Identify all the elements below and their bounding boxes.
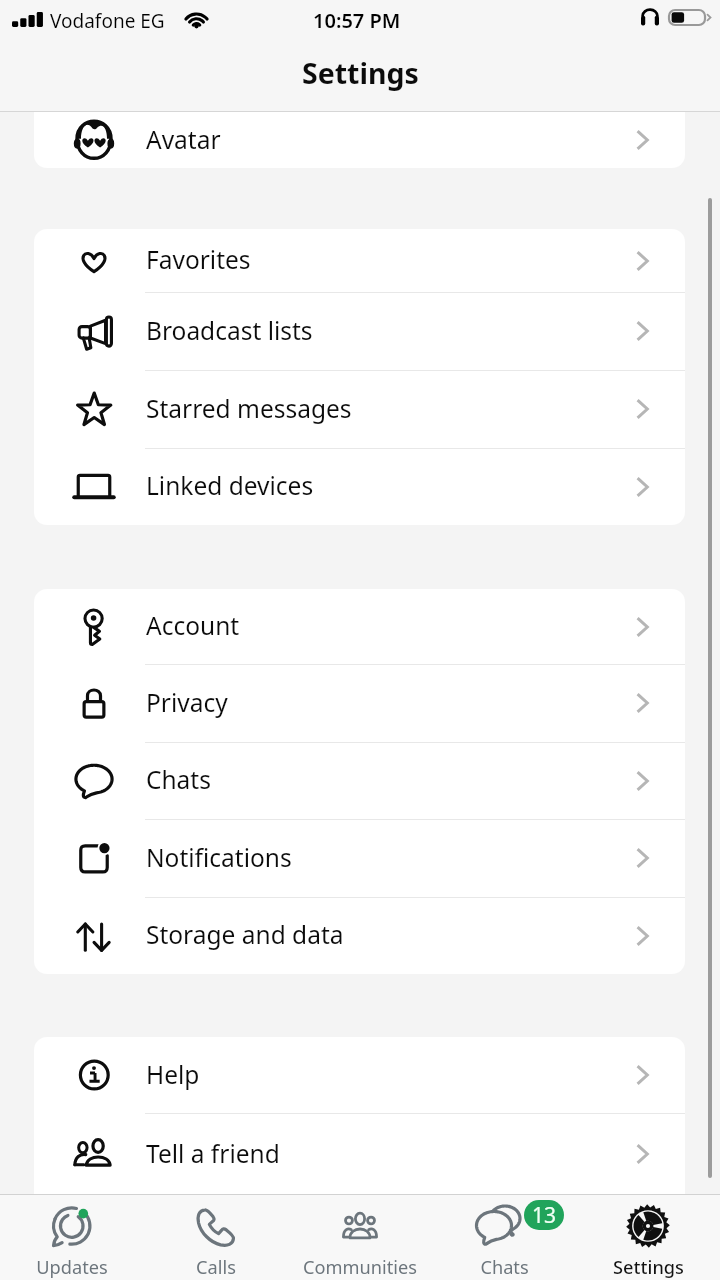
staticText: Help: [146, 1058, 200, 1091]
staticText: Vodafone EG: [50, 8, 165, 34]
button[interactable]: Avatar: [34, 112, 685, 168]
staticText: 10:57 PM: [313, 7, 401, 34]
staticText: Avatar: [146, 123, 221, 156]
button[interactable]: Broadcast lists: [34, 292, 685, 370]
staticText: Updates: [36, 1255, 108, 1280]
staticText: Chats: [146, 763, 211, 796]
button[interactable]: Favorites: [34, 229, 685, 292]
button[interactable]: Calls: [144, 1195, 288, 1280]
button[interactable]: Tell a friend: [34, 1113, 685, 1195]
button[interactable]: Notifications: [34, 819, 685, 897]
button[interactable]: Linked devices: [34, 448, 685, 525]
staticText: Notifications: [146, 841, 292, 874]
staticText: Account: [146, 609, 240, 642]
staticText: 13: [532, 1201, 557, 1230]
staticText: Calls: [196, 1255, 236, 1280]
button[interactable]: Communities: [288, 1195, 432, 1280]
button[interactable]: Privacy: [34, 664, 685, 742]
staticText: Starred messages: [146, 392, 352, 425]
staticText: Tell a friend: [146, 1137, 280, 1170]
staticText: Broadcast lists: [146, 314, 313, 347]
staticText: Settings: [613, 1255, 684, 1280]
button[interactable]: Storage and data: [34, 897, 685, 974]
staticText: Storage and data: [146, 918, 344, 951]
button[interactable]: Starred messages: [34, 370, 685, 448]
staticText: Favorites: [146, 243, 251, 276]
button[interactable]: 13: [432, 1195, 576, 1280]
button[interactable]: Chats: [34, 742, 685, 819]
button[interactable]: Settings: [576, 1195, 720, 1280]
staticText: Communities: [303, 1255, 417, 1280]
staticText: Linked devices: [146, 469, 314, 502]
staticText: Privacy: [146, 686, 228, 719]
button[interactable]: Updates: [0, 1195, 144, 1280]
staticText: Settings: [302, 54, 419, 93]
staticText: Chats: [480, 1255, 529, 1280]
button[interactable]: Account: [34, 589, 685, 664]
button[interactable]: Help: [34, 1037, 685, 1113]
